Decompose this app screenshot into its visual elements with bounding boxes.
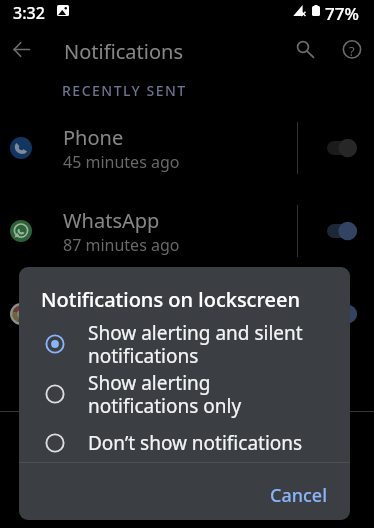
button[interactable]: Toggle Phone notifications: [310, 106, 372, 189]
staticText: 2 hours ago: [63, 317, 153, 339]
button[interactable]: Back: [13, 42, 30, 57]
button[interactable]: Don’t show notifications: [19, 419, 350, 467]
button[interactable]: Toggle Google notifications: [310, 272, 372, 355]
staticText: RECENTLY SENT: [62, 81, 187, 100]
button[interactable]: Toggle WhatsApp notifications: [310, 189, 372, 272]
button[interactable]: Help: [340, 37, 364, 61]
button[interactable]: WhatsApp: [0, 189, 374, 272]
staticText: 87 minutes ago: [63, 234, 180, 256]
button[interactable]: Show alerting and silent notifications: [19, 320, 350, 368]
staticText: ?: [349, 42, 355, 60]
button[interactable]: Search: [293, 37, 317, 61]
staticText: Cancel: [270, 483, 328, 508]
staticText: Google: [63, 290, 131, 317]
staticText: Notifications on lockscreen: [41, 286, 300, 313]
button[interactable]: Cancel: [260, 475, 338, 516]
button[interactable]: Google: [0, 272, 374, 355]
staticText: Notifications: [64, 38, 183, 65]
staticText: 3:32: [13, 2, 45, 24]
staticText: 45 minutes ago: [63, 151, 180, 173]
staticText: 77%: [325, 2, 359, 25]
staticText: Show alerting and silent notifications: [88, 320, 303, 368]
button[interactable]: Phone: [0, 106, 374, 189]
staticText: Don’t show notifications: [88, 430, 303, 456]
staticText: Phone: [63, 124, 124, 151]
button[interactable]: Show alerting notifications only: [19, 370, 350, 418]
staticText: WhatsApp: [63, 207, 160, 234]
staticText: Show alerting notifications only: [88, 370, 242, 418]
